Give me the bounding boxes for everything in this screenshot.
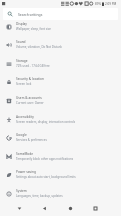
button[interactable]: Search settings <box>3 8 118 20</box>
button[interactable]: Display <box>0 17 121 36</box>
staticText: Settings about auto start, background li… <box>16 175 76 179</box>
staticText: Google <box>16 133 27 137</box>
staticText: Power saving <box>16 170 36 174</box>
button[interactable]: System <box>0 184 121 203</box>
staticText: Wallpaper, sleep, font size <box>16 27 51 31</box>
staticText: Accessibility <box>16 115 34 119</box>
button[interactable]: Users & accounts <box>0 91 121 110</box>
button[interactable]: Home <box>64 201 76 216</box>
button[interactable]: Google <box>0 128 121 147</box>
staticText: Current user: Owner <box>16 101 44 105</box>
staticText: Temporarily block other apps notificatio… <box>16 157 74 161</box>
staticText: Users & accounts <box>16 96 42 100</box>
button[interactable]: SomeMode <box>0 147 121 166</box>
button[interactable]: Accessibility <box>0 110 121 129</box>
staticText: Screen lock <box>16 82 32 86</box>
staticText: Security & location <box>16 77 44 81</box>
staticText: 2:09 PM <box>105 2 117 6</box>
staticText: 89% <box>95 2 101 6</box>
button[interactable]: Storage <box>0 54 121 73</box>
button[interactable]: Back <box>38 201 50 216</box>
staticText: System <box>16 189 27 193</box>
button[interactable]: Recent apps <box>89 201 101 216</box>
staticText: Storage <box>16 59 28 63</box>
button[interactable]: Security & location <box>0 72 121 91</box>
staticText: 72% used - 17.64 GB free <box>16 64 50 68</box>
staticText: Services & preferences <box>16 138 47 142</box>
staticText: Display <box>16 22 27 26</box>
button[interactable]: Hide keyboard <box>13 201 25 216</box>
button[interactable]: Sound <box>0 35 121 54</box>
staticText: SomeMode <box>16 152 34 156</box>
staticText: Languages, time, backup, updates <box>16 194 63 198</box>
button[interactable]: Power saving <box>0 165 121 184</box>
staticText: Sound <box>16 40 26 44</box>
staticText: Screen readers, display, interaction con… <box>16 120 76 124</box>
staticText: Search settings <box>18 12 43 17</box>
staticText: Volume, vibration, Do Not Disturb <box>16 45 62 49</box>
